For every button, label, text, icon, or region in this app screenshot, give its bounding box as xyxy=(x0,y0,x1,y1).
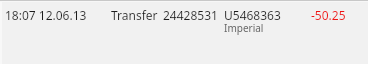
staticText: Transfer xyxy=(111,7,158,23)
button[interactable]: 18:07 12.06.13 xyxy=(0,0,368,64)
staticText: Imperial xyxy=(224,21,264,35)
staticText: -50.25 xyxy=(311,7,346,23)
staticText: 24428531 xyxy=(163,7,218,23)
staticText: 18:07 12.06.13 xyxy=(5,7,87,23)
staticText: U5468363 xyxy=(224,7,281,23)
